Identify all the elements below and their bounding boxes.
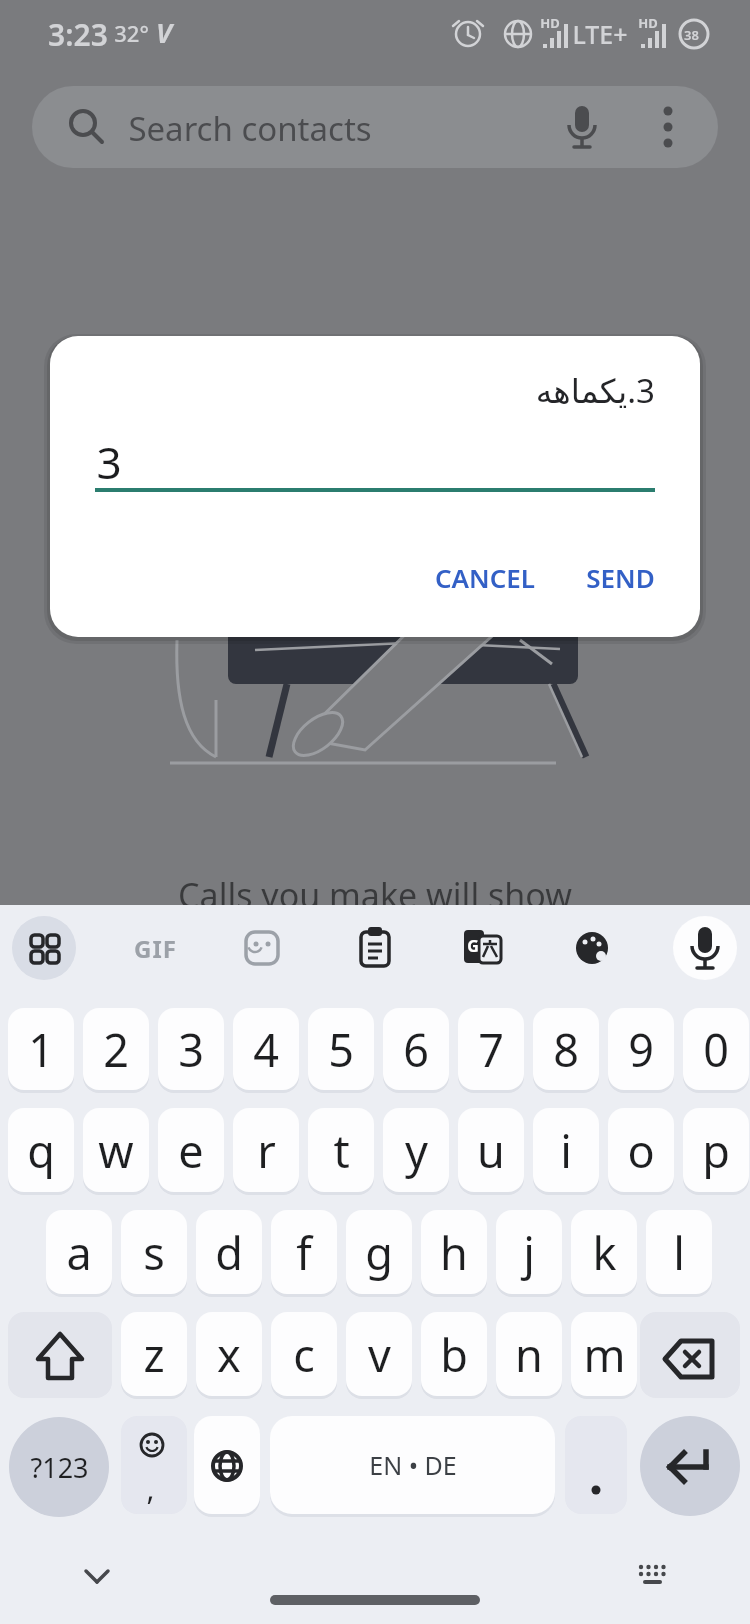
staticText: m	[583, 1324, 626, 1385]
button[interactable]: k	[571, 1210, 637, 1294]
button[interactable]	[8, 1312, 112, 1398]
staticText: r	[257, 1120, 276, 1181]
staticText: ?123	[30, 1449, 89, 1486]
staticText: 3:23	[48, 14, 108, 55]
button[interactable]: a	[46, 1210, 112, 1294]
button[interactable]: f	[271, 1210, 337, 1294]
button[interactable]: 6	[383, 1008, 449, 1090]
button[interactable]	[194, 1416, 260, 1514]
button[interactable]: 4	[233, 1008, 299, 1090]
button[interactable]: 5	[308, 1008, 374, 1090]
staticText: k	[592, 1222, 617, 1283]
staticText: GIF	[134, 932, 177, 965]
button[interactable]: q	[8, 1108, 74, 1192]
staticText: 8	[553, 1019, 579, 1080]
staticText: HD	[638, 14, 658, 32]
button[interactable]	[12, 916, 76, 980]
staticText: 7	[478, 1019, 504, 1080]
button[interactable]: ?123	[9, 1417, 109, 1517]
button[interactable]: u	[458, 1108, 524, 1192]
button[interactable]: 8	[533, 1008, 599, 1090]
staticText: 0	[703, 1019, 729, 1080]
button[interactable]: g	[346, 1210, 412, 1294]
button[interactable]	[640, 1312, 740, 1398]
button[interactable]: l	[646, 1210, 712, 1294]
staticText: LTE+	[572, 17, 628, 51]
button[interactable]	[640, 1416, 740, 1516]
button[interactable]	[32, 86, 718, 168]
staticText: i	[560, 1120, 572, 1181]
staticText: 6	[403, 1019, 429, 1080]
staticText: SEND	[586, 560, 655, 595]
button[interactable]: 3	[158, 1008, 224, 1090]
staticText: y	[405, 1120, 428, 1181]
button[interactable]: e	[158, 1108, 224, 1192]
button[interactable]: 7	[458, 1008, 524, 1090]
staticText: n	[515, 1324, 543, 1385]
staticText: CANCEL	[435, 560, 535, 595]
staticText: G	[467, 935, 479, 957]
staticText: o	[627, 1120, 655, 1181]
button[interactable]: y	[383, 1108, 449, 1192]
button[interactable]: v	[346, 1312, 412, 1396]
staticText: 3	[178, 1019, 204, 1080]
staticText: 5	[328, 1019, 354, 1080]
button[interactable]: c	[271, 1312, 337, 1396]
button[interactable]: o	[608, 1108, 674, 1192]
staticText: ,	[146, 1468, 155, 1509]
staticText: l	[673, 1222, 685, 1283]
button[interactable]: 1	[8, 1008, 74, 1090]
button[interactable]: m	[571, 1312, 637, 1396]
staticText: 32°	[114, 18, 149, 48]
button[interactable]: GIF	[123, 916, 187, 980]
staticText: v	[368, 1324, 391, 1385]
button[interactable]: EN • DE	[270, 1416, 555, 1514]
button[interactable]: z	[121, 1312, 187, 1396]
button[interactable]: 9	[608, 1008, 674, 1090]
button[interactable]: r	[233, 1108, 299, 1192]
button[interactable]: i	[533, 1108, 599, 1192]
staticText: z	[143, 1324, 165, 1385]
staticText: u	[477, 1120, 505, 1181]
staticText: 4	[253, 1019, 279, 1080]
button[interactable]	[560, 916, 624, 980]
button[interactable]	[565, 1416, 627, 1514]
button[interactable]	[343, 916, 407, 980]
button[interactable]: CANCEL	[420, 552, 550, 602]
button[interactable]: x	[196, 1312, 262, 1396]
staticText: x	[217, 1324, 241, 1385]
button[interactable]: p	[683, 1108, 749, 1192]
button[interactable]: j	[496, 1210, 562, 1294]
staticText: 9	[628, 1019, 654, 1080]
staticText: Calls you make will show	[178, 872, 572, 905]
staticText: 3.یکماهه	[50, 368, 655, 418]
button[interactable]: h	[421, 1210, 487, 1294]
button[interactable]	[121, 1416, 187, 1514]
staticText: h	[440, 1222, 468, 1283]
button[interactable]: n	[496, 1312, 562, 1396]
button[interactable]: t	[308, 1108, 374, 1192]
button[interactable]	[450, 916, 514, 980]
staticText: b	[440, 1324, 468, 1385]
staticText: c	[293, 1324, 315, 1385]
staticText: t	[333, 1120, 350, 1181]
button[interactable]: d	[196, 1210, 262, 1294]
staticText: w	[98, 1120, 134, 1181]
button[interactable]: s	[121, 1210, 187, 1294]
staticText: EN • DE	[369, 1448, 457, 1482]
button[interactable]: SEND	[570, 552, 670, 602]
staticText: Search contacts	[128, 106, 372, 151]
staticText: j	[523, 1222, 535, 1283]
staticText: 2	[103, 1019, 129, 1080]
button[interactable]	[230, 916, 294, 980]
button[interactable]	[673, 916, 737, 980]
button[interactable]: b	[421, 1312, 487, 1396]
staticText: HD	[540, 14, 560, 32]
button[interactable]: 0	[683, 1008, 749, 1090]
button[interactable]: 2	[83, 1008, 149, 1090]
staticText: 38	[684, 26, 699, 44]
staticText: a	[66, 1222, 92, 1283]
staticText: f	[296, 1222, 312, 1283]
staticText: d	[215, 1222, 243, 1283]
button[interactable]: w	[83, 1108, 149, 1192]
